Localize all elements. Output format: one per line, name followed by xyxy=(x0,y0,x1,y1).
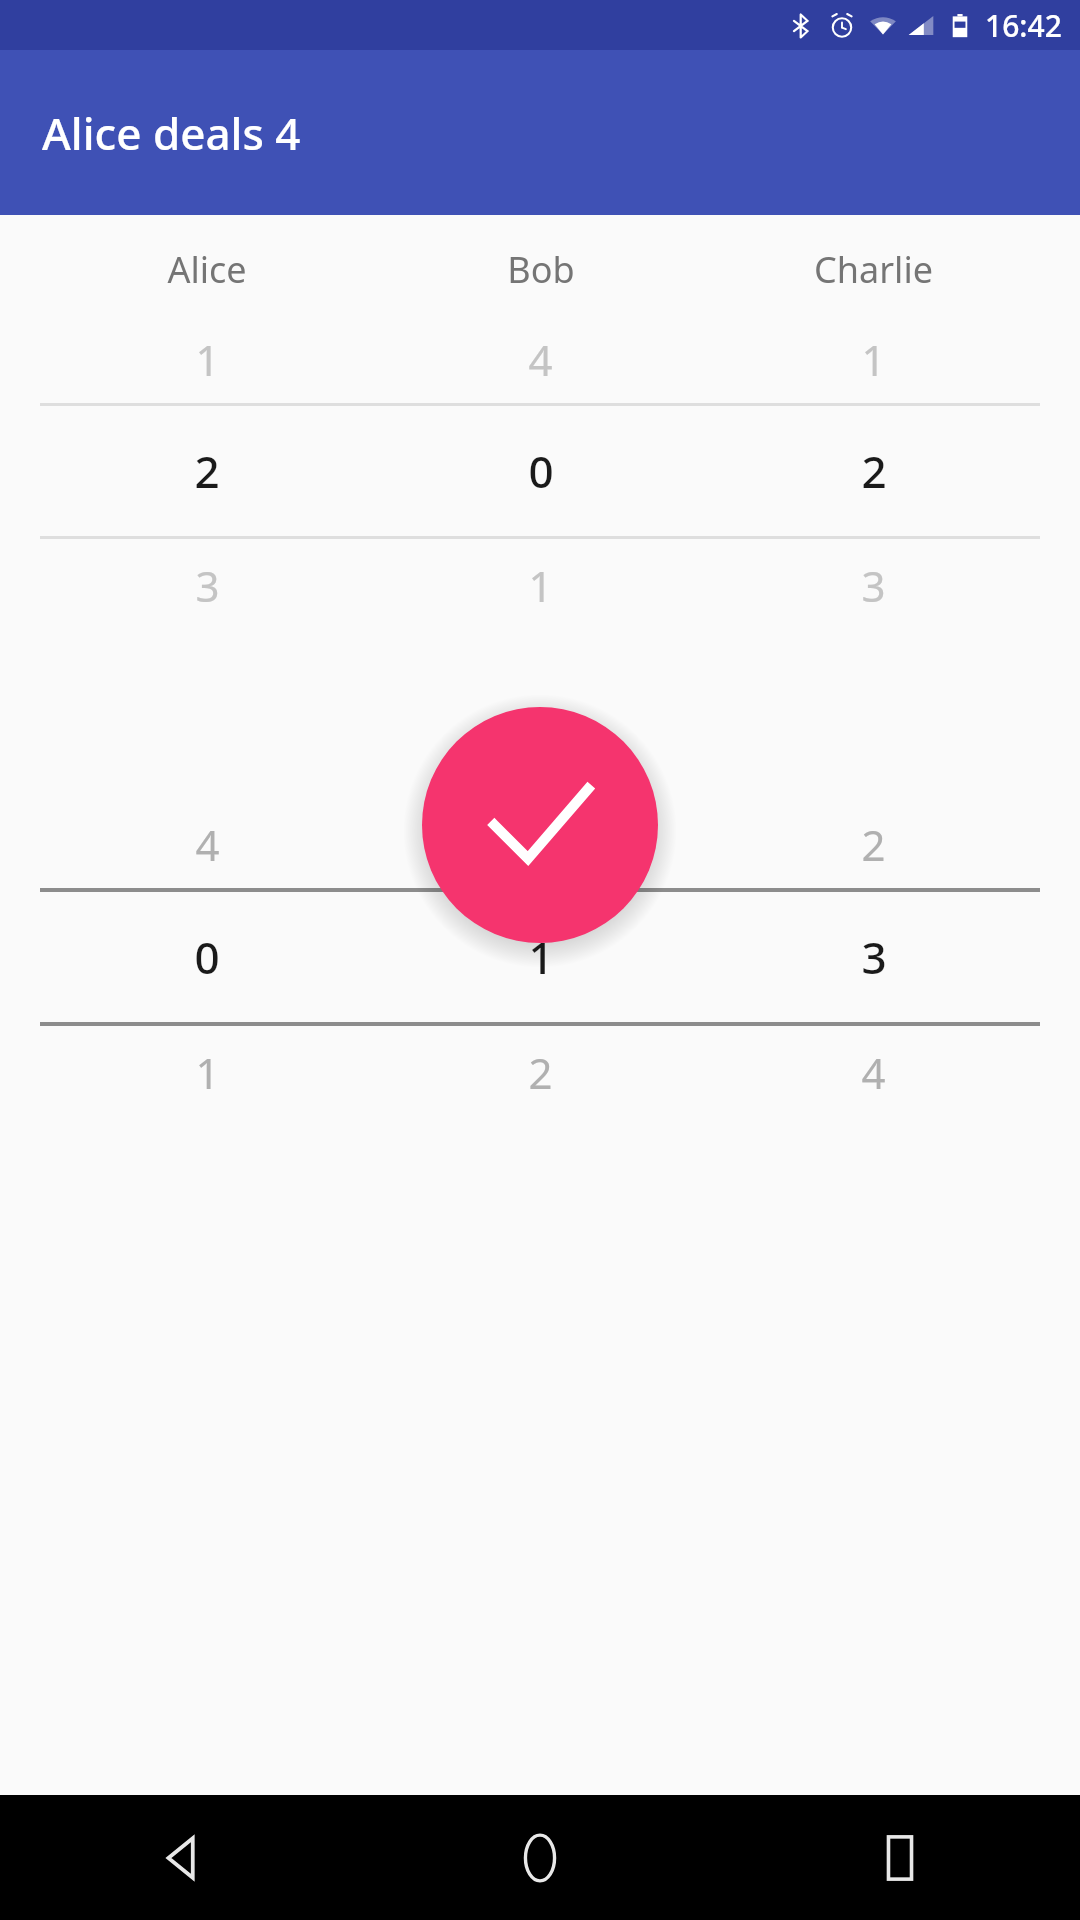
button[interactable]: 1 xyxy=(40,1026,374,1118)
staticText: 16:42 xyxy=(985,5,1062,46)
button[interactable]: 0 xyxy=(374,801,707,888)
staticText: 4 xyxy=(195,816,220,873)
button[interactable]: Recent apps xyxy=(720,1795,1080,1920)
staticText: 2 xyxy=(861,441,887,501)
button[interactable]: 1 xyxy=(40,316,374,403)
staticText: 2 xyxy=(861,816,886,873)
button[interactable]: 2 xyxy=(707,406,1040,536)
staticText: 4 xyxy=(528,331,553,388)
staticText: Charlie xyxy=(814,245,933,294)
staticText: 3 xyxy=(861,927,887,987)
button[interactable]: Back xyxy=(0,1795,360,1920)
staticText: 0 xyxy=(528,441,554,501)
button[interactable]: 3 xyxy=(707,892,1040,1022)
staticText: 1 xyxy=(195,331,220,388)
button[interactable]: 4 xyxy=(707,1026,1040,1118)
staticText: 0 xyxy=(194,927,220,987)
staticText: 4 xyxy=(861,1044,886,1101)
staticText: 3 xyxy=(195,557,220,614)
button[interactable]: 3 xyxy=(40,539,374,631)
button[interactable]: 3 xyxy=(707,539,1040,631)
button[interactable]: 2 xyxy=(40,406,374,536)
button[interactable]: 1 xyxy=(374,539,707,631)
button[interactable]: 4 xyxy=(374,316,707,403)
staticText: 2 xyxy=(194,441,220,501)
staticText: 2 xyxy=(528,1044,553,1101)
button[interactable]: Home xyxy=(360,1795,720,1920)
button[interactable]: Confirm xyxy=(422,707,658,943)
button[interactable]: 1 xyxy=(707,316,1040,403)
staticText: Bob xyxy=(507,245,575,294)
button[interactable]: 4 xyxy=(40,801,374,888)
button[interactable]: 2 xyxy=(374,1026,707,1118)
button[interactable]: 0 xyxy=(40,892,374,1022)
button[interactable]: 1 xyxy=(374,892,707,1022)
staticText: 0 xyxy=(528,816,553,873)
staticText: 3 xyxy=(861,557,886,614)
staticText: Alice deals 4 xyxy=(42,103,301,163)
staticText: 1 xyxy=(528,927,554,987)
button[interactable]: 2 xyxy=(707,801,1040,888)
staticText: 1 xyxy=(195,1044,220,1101)
staticText: Alice xyxy=(167,245,247,294)
staticText: 1 xyxy=(861,331,886,388)
staticText: 1 xyxy=(528,557,553,614)
button[interactable]: 0 xyxy=(374,406,707,536)
